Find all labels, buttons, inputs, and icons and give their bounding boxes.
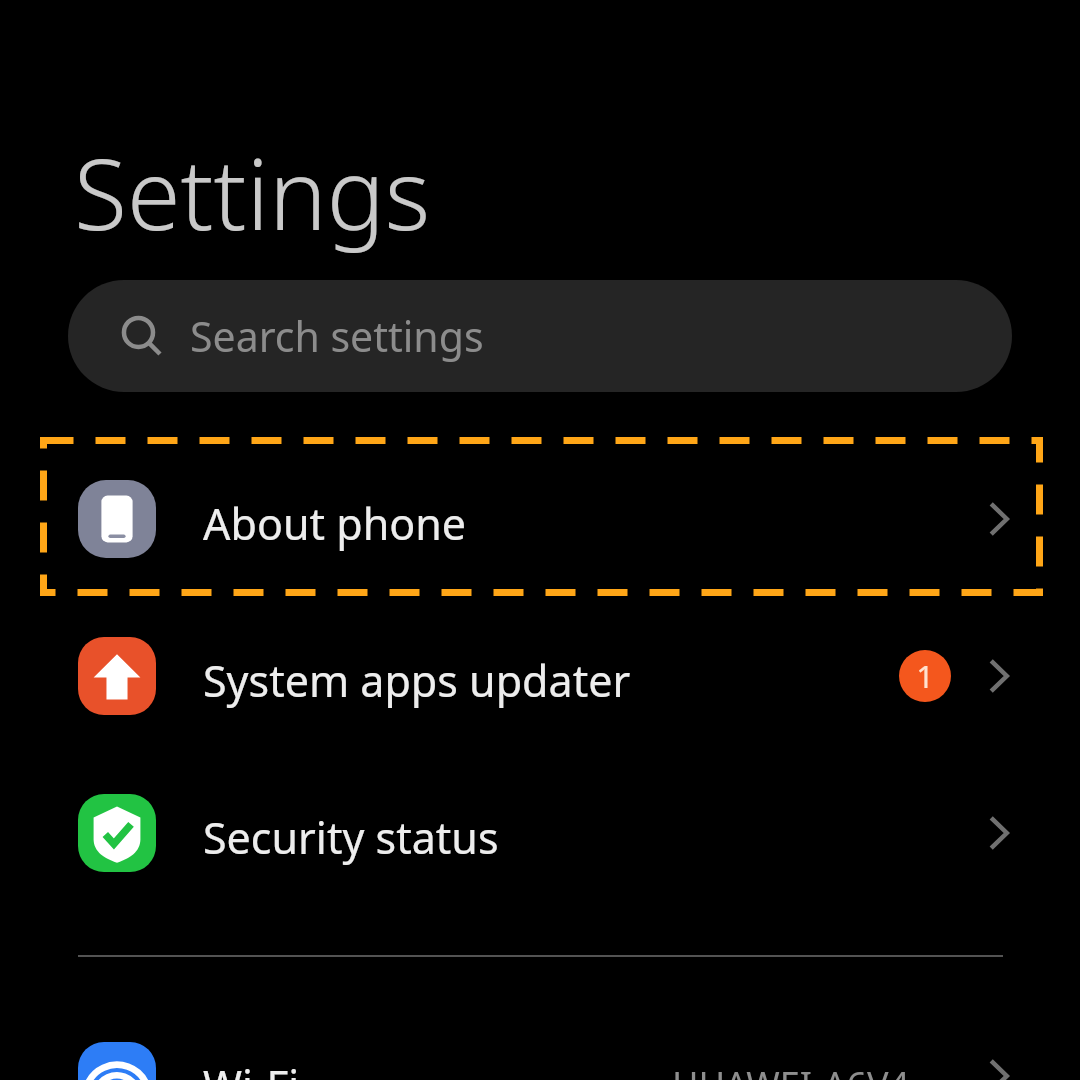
staticText: Security status xyxy=(203,808,499,867)
staticText: Settings xyxy=(74,126,431,258)
button[interactable]: Wi-Fi xyxy=(0,1004,1080,1080)
button[interactable]: Security status xyxy=(0,755,1080,912)
button[interactable]: Search settings xyxy=(68,280,1012,392)
staticText: 1 xyxy=(916,655,934,697)
staticText: About phone xyxy=(203,494,467,553)
button[interactable]: About phone xyxy=(0,441,1080,598)
staticText: Wi-Fi xyxy=(203,1056,300,1080)
staticText: System apps updater xyxy=(203,651,631,710)
staticText: HUAWEI-A6V4 xyxy=(672,1060,910,1080)
staticText: Search settings xyxy=(190,308,484,364)
button[interactable]: System apps updater xyxy=(0,598,1080,755)
